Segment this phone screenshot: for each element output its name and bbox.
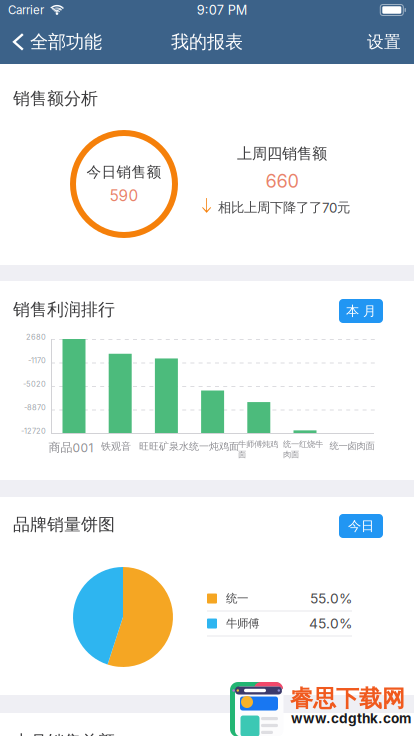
staticText: 相比上周下降了了70元 — [218, 199, 350, 216]
staticText: 2680 — [26, 332, 46, 341]
staticText: 销售额分析 — [13, 88, 98, 109]
staticText: 牛师傅 — [226, 616, 259, 631]
button[interactable]: 设置 — [349, 20, 414, 64]
staticText: 全部功能 — [30, 31, 102, 53]
staticText: 统一红烧牛 肉面 — [283, 439, 323, 460]
staticText: 统一 — [226, 591, 248, 606]
staticText: 55.0% — [310, 590, 352, 607]
staticText: 45.0% — [309, 615, 352, 632]
staticText: 品牌销量饼图 — [13, 514, 115, 535]
staticText: 铁观音 — [101, 440, 131, 453]
staticText: 旺旺矿泉水统一炖鸡面 — [139, 440, 239, 453]
staticText: 统一卤肉面 — [329, 440, 374, 452]
staticText: -8870 — [24, 403, 46, 412]
staticText: 9:07 PM — [197, 2, 248, 18]
staticText: 今日 — [348, 518, 374, 534]
button[interactable]: 全部功能 — [0, 20, 112, 64]
staticText: www.cdgthk.com — [291, 710, 411, 726]
staticText: 今日销售额 — [86, 163, 161, 181]
staticText: 660 — [265, 170, 298, 192]
staticText: 商品001 — [48, 440, 93, 455]
staticText: 上周四销售额 — [237, 144, 327, 163]
staticText: 本月销售总额 — [13, 731, 115, 736]
staticText: 销售利润排行 — [13, 299, 115, 320]
staticText: 本 月 — [346, 303, 376, 319]
staticText: 设置 — [367, 31, 401, 52]
staticText: -12720 — [21, 426, 46, 435]
staticText: Carrier — [8, 3, 44, 17]
staticText: 我的报表 — [171, 31, 243, 53]
staticText: -5020 — [23, 379, 46, 388]
staticText: 590 — [109, 186, 138, 205]
staticText: 睿思下载网 — [290, 684, 405, 713]
button[interactable]: 今日 — [339, 514, 383, 538]
staticText: 牛师傅炖鸡 面 — [238, 439, 278, 460]
staticText: -1170 — [28, 356, 46, 365]
button[interactable]: 本 月 — [339, 299, 383, 323]
